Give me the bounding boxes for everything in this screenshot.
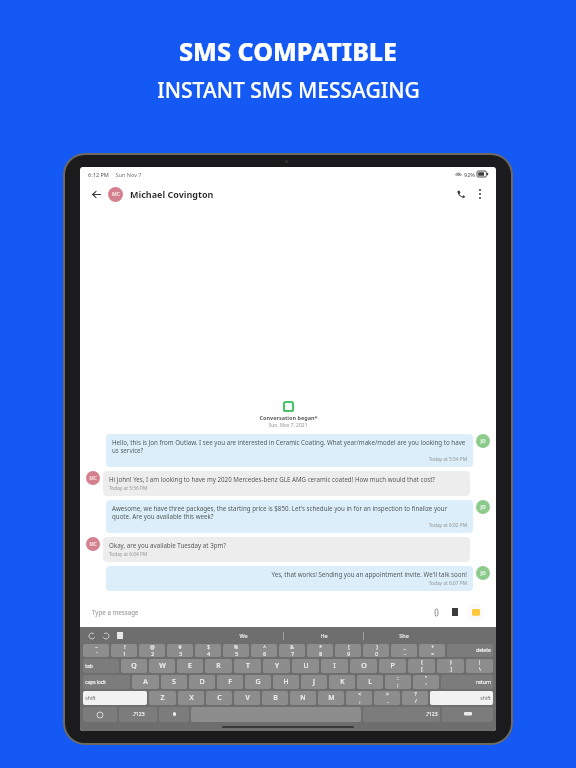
button[interactable]: return [441,675,493,689]
staticText: Michael Covington [130,188,214,200]
button[interactable]: W [149,659,175,673]
button[interactable]: * [307,644,333,657]
button[interactable]: G [245,675,271,689]
button[interactable]: Awesome, we have three packages, the sta… [106,500,473,533]
button[interactable]: Send message [467,604,484,621]
button[interactable]: + [419,644,445,657]
button[interactable]: B [262,691,288,705]
button[interactable]: Emoji [83,707,117,722]
button[interactable]: ^ [251,644,277,657]
button[interactable]: .?123 [119,707,157,722]
button[interactable]: Attach file [429,605,443,619]
button[interactable]: L [357,675,383,689]
button[interactable]: delete [447,644,493,657]
button[interactable]: O [350,659,377,673]
button[interactable]: H [273,675,299,689]
button[interactable]: @ [139,644,165,657]
button[interactable]: Back [88,186,104,202]
staticText: ` [96,651,98,657]
button[interactable]: shift [83,691,147,705]
button[interactable]: caps lock [83,675,130,689]
button[interactable]: Paste [114,630,125,641]
button[interactable]: & [279,644,305,657]
button[interactable]: " [413,675,439,689]
button[interactable]: J [301,675,327,689]
button[interactable]: < [346,691,372,705]
button[interactable]: > [374,691,400,705]
button[interactable]: Type a message [84,601,492,623]
staticText: ) [376,644,378,651]
button[interactable]: ) [363,644,389,657]
button[interactable]: | [466,659,493,673]
staticText: JO [480,438,486,444]
button[interactable]: JO [476,500,490,514]
button[interactable]: He [284,628,363,643]
staticText: [ [421,666,423,673]
button[interactable]: MC [86,537,100,551]
button[interactable]: ( [335,644,361,657]
button[interactable]: .?123 [363,707,440,722]
staticText: X [189,693,194,703]
button[interactable]: ? [402,691,428,705]
button[interactable]: I [321,659,348,673]
button[interactable]: shift [430,691,493,705]
button[interactable]: Yes, that works! Sending you an appointm… [106,566,473,591]
button[interactable]: P [379,659,406,673]
button[interactable]: Y [263,659,290,673]
button[interactable]: T [234,659,261,673]
button[interactable]: : [385,675,411,689]
button[interactable]: MC [86,471,100,485]
button[interactable]: D [189,675,215,689]
button[interactable]: } [437,659,464,673]
button[interactable]: $ [195,644,221,657]
button[interactable]: tab [83,659,119,673]
button[interactable]: Call [453,186,469,202]
button[interactable]: ! [111,644,137,657]
button[interactable]: Undo [86,630,97,641]
button[interactable]: U [292,659,319,673]
button[interactable]: E [177,659,203,673]
button[interactable]: Hide keyboard [442,707,493,722]
button[interactable]: Z [149,691,176,705]
staticText: Type a message [92,608,139,616]
button[interactable]: X [178,691,204,705]
staticText: 0 [375,651,378,657]
button[interactable]: V [234,691,260,705]
staticText: ; [397,682,399,689]
button[interactable]: She [364,628,443,643]
staticText: .?123 [132,711,145,718]
staticText: F [228,677,232,687]
button[interactable]: More options [472,186,488,202]
button[interactable]: # [167,644,193,657]
staticText: D [199,677,205,687]
button[interactable]: We [204,628,283,643]
staticText: Today at 6:04 PM [109,551,464,558]
button[interactable]: K [329,675,355,689]
button[interactable]: MC [108,187,123,202]
button[interactable]: Okay, are you available Tuesday at 3pm? [103,537,470,562]
button[interactable]: N [290,691,316,705]
staticText: JO [480,570,486,576]
staticText: return [476,679,491,686]
button[interactable]: JO [476,434,490,448]
button[interactable]: JO [476,566,490,580]
button[interactable]: F [217,675,243,689]
button[interactable]: ~ [83,644,109,657]
button[interactable]: Hi John! Yes, I am looking to have my 20… [103,471,470,496]
button[interactable]: % [223,644,249,657]
button[interactable]: S [161,675,187,689]
button[interactable]: { [408,659,435,673]
button[interactable]: _ [391,644,417,657]
button[interactable]: M [318,691,344,705]
button[interactable]: Redo [100,630,111,641]
button[interactable]: C [206,691,232,705]
button[interactable]: Attach document [448,605,462,619]
button[interactable]: R [205,659,232,673]
button[interactable]: Q [121,659,147,673]
button[interactable]: Hello, this is Jon from Outlaw. I see yo… [106,434,473,467]
button[interactable]: Voice input [159,707,189,722]
staticText: U [303,661,309,671]
staticText: , [359,698,361,705]
button[interactable]: A [132,675,159,689]
